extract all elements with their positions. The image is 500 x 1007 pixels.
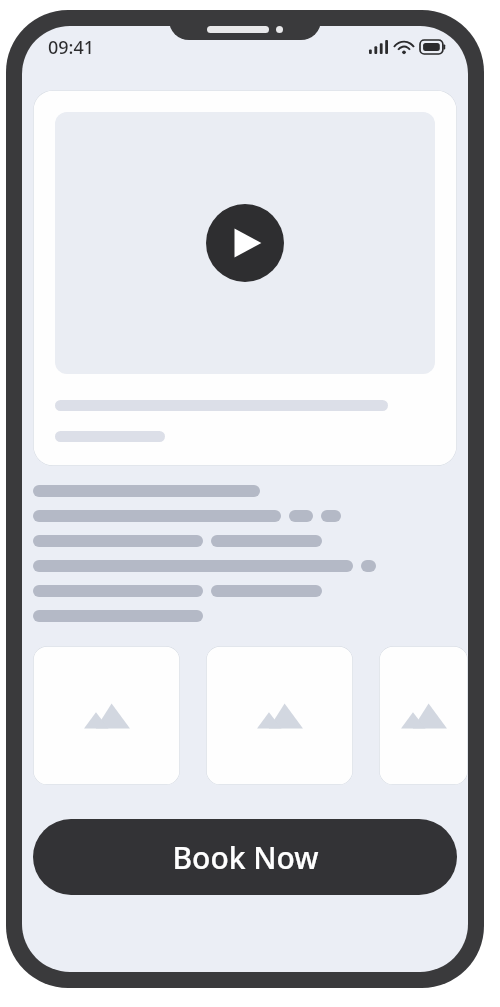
button[interactable]: Book Now	[33, 819, 457, 895]
button[interactable]: Play video	[55, 112, 435, 374]
staticText: 09:41	[48, 35, 95, 60]
button[interactable]: Photo thumbnail	[379, 646, 468, 785]
button[interactable]: Photo thumbnail	[33, 646, 180, 785]
button[interactable]: Play video	[33, 90, 457, 466]
staticText: Book Now	[172, 837, 319, 878]
button[interactable]: Photo thumbnail	[206, 646, 353, 785]
